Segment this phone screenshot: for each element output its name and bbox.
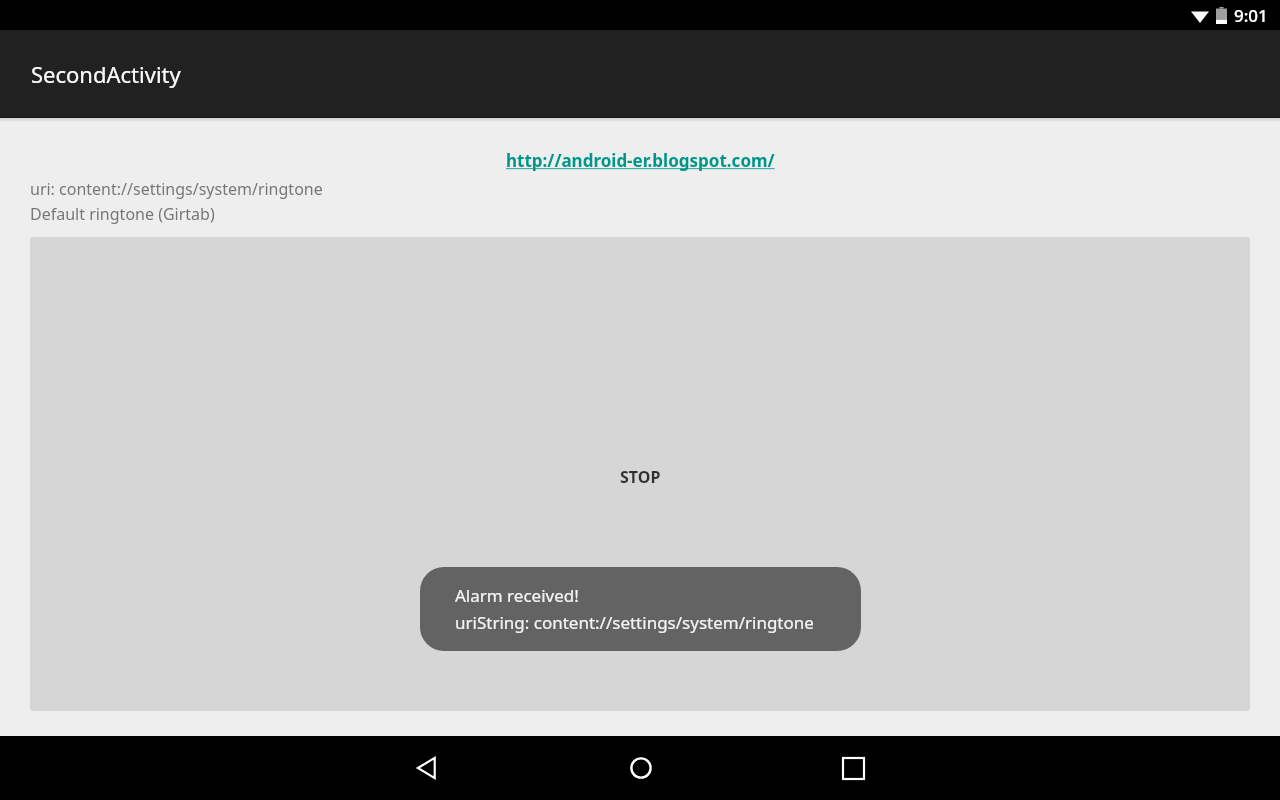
staticText: STOP [620, 466, 661, 488]
staticText: http://android-er.blogspot.com/ [506, 149, 775, 172]
button[interactable]: Back [321, 736, 534, 800]
staticText: uri: content://settings/system/ringtone [30, 178, 323, 200]
button[interactable]: STOP [30, 237, 1250, 711]
staticText: uriString: content://settings/system/rin… [455, 611, 814, 634]
staticText: Alarm received! [455, 584, 579, 607]
staticText: Default ringtone (Girtab) [30, 203, 215, 225]
button[interactable]: Recent apps [747, 736, 960, 800]
button[interactable]: http://android-er.blogspot.com/ [506, 149, 775, 172]
button[interactable]: Home [534, 736, 747, 800]
staticText: 9:01 [1234, 4, 1268, 27]
staticText: SecondActivity [31, 59, 181, 89]
